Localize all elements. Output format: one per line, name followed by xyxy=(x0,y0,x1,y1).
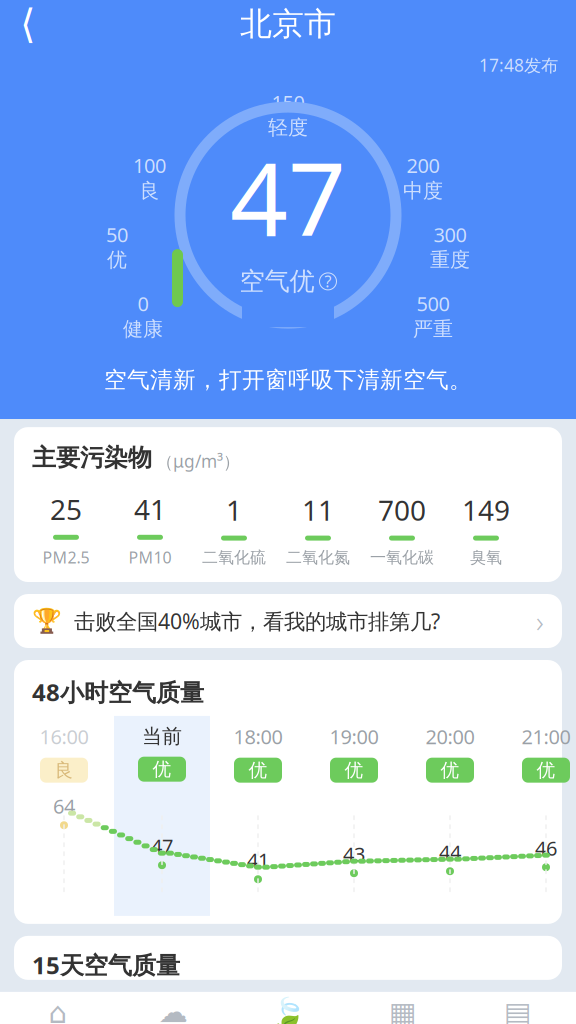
staticText: 优 xyxy=(152,758,171,781)
staticText: 43 xyxy=(343,841,365,867)
staticText: 46 xyxy=(535,835,557,861)
button[interactable]: Back xyxy=(0,1,56,47)
button[interactable]: ☁ xyxy=(115,994,230,1024)
staticText: 15天空气质量 xyxy=(32,949,180,981)
staticText: ⌂ xyxy=(48,996,67,1024)
staticText: 空气清新，打开窗呼吸下清新空气。 xyxy=(104,366,472,394)
staticText: 🍃 xyxy=(269,996,306,1024)
staticText: 48小时空气质量 xyxy=(32,676,204,708)
button[interactable]: 🍃 xyxy=(230,994,345,1024)
staticText: ▤ xyxy=(504,996,532,1024)
staticText: 21:00 xyxy=(521,723,570,750)
staticText: ? xyxy=(324,271,331,292)
staticText: 300 xyxy=(433,221,466,248)
staticText: 44 xyxy=(439,839,461,865)
staticText: 16:00 xyxy=(39,723,88,750)
staticText: ▦ xyxy=(389,996,417,1024)
staticText: 北京市 xyxy=(240,4,336,44)
staticText: 700 xyxy=(378,491,426,529)
staticText: PM10 xyxy=(128,547,171,568)
staticText: 0 xyxy=(137,290,148,317)
staticText: 200 xyxy=(406,152,439,179)
staticText: 二氧化硫 xyxy=(202,548,266,567)
staticText: 11 xyxy=(302,491,334,529)
staticText: 良 xyxy=(54,759,73,782)
staticText: 150 xyxy=(271,89,304,115)
staticText: 47 xyxy=(230,129,346,264)
staticText: 优 xyxy=(536,759,555,782)
staticText: 一氧化碳 xyxy=(370,548,434,567)
button[interactable]: 🏆 xyxy=(14,594,562,648)
staticText: 优 xyxy=(248,759,267,782)
staticText: 二氧化氮 xyxy=(286,548,350,567)
staticText: › xyxy=(536,601,544,640)
staticText: 轻度 xyxy=(268,115,308,140)
staticText: 击败全国40%城市，看我的城市排第几? xyxy=(74,607,440,635)
staticText: 良 xyxy=(139,178,159,203)
staticText: 19:00 xyxy=(329,723,378,750)
staticText: ⟨ xyxy=(20,1,36,47)
staticText: 空气优 xyxy=(239,266,314,297)
staticText: 优 xyxy=(107,248,127,272)
button[interactable]: ▦ xyxy=(345,994,460,1024)
staticText: 100 xyxy=(133,152,166,179)
staticText: 优 xyxy=(440,759,459,782)
staticText: 41 xyxy=(134,491,166,528)
staticText: 重度 xyxy=(430,248,470,272)
staticText: 64 xyxy=(53,793,75,819)
staticText: （μg/m³） xyxy=(156,449,240,473)
staticText: 149 xyxy=(462,491,510,529)
staticText: 25 xyxy=(50,491,82,528)
staticText: 健康 xyxy=(123,317,163,341)
staticText: 500 xyxy=(416,290,449,317)
staticText: 臭氧 xyxy=(470,548,502,567)
button[interactable]: ▤ xyxy=(460,994,575,1024)
staticText: PM2.5 xyxy=(42,547,89,568)
staticText: 中度 xyxy=(403,178,443,203)
staticText: 严重 xyxy=(413,317,453,341)
staticText: 主要污染物 xyxy=(32,443,152,473)
staticText: ☁ xyxy=(158,995,187,1024)
staticText: 20:00 xyxy=(425,723,474,750)
staticText: 1 xyxy=(226,491,242,529)
staticText: 17:48发布 xyxy=(479,54,558,77)
staticText: 🏆 xyxy=(32,607,62,635)
staticText: 当前 xyxy=(142,724,182,749)
button[interactable]: ⌂ xyxy=(0,994,115,1024)
staticText: 50 xyxy=(106,221,128,248)
staticText: 优 xyxy=(344,759,363,782)
staticText: 18:00 xyxy=(233,723,282,750)
staticText: 47 xyxy=(151,833,173,859)
staticText: 41 xyxy=(247,847,269,873)
